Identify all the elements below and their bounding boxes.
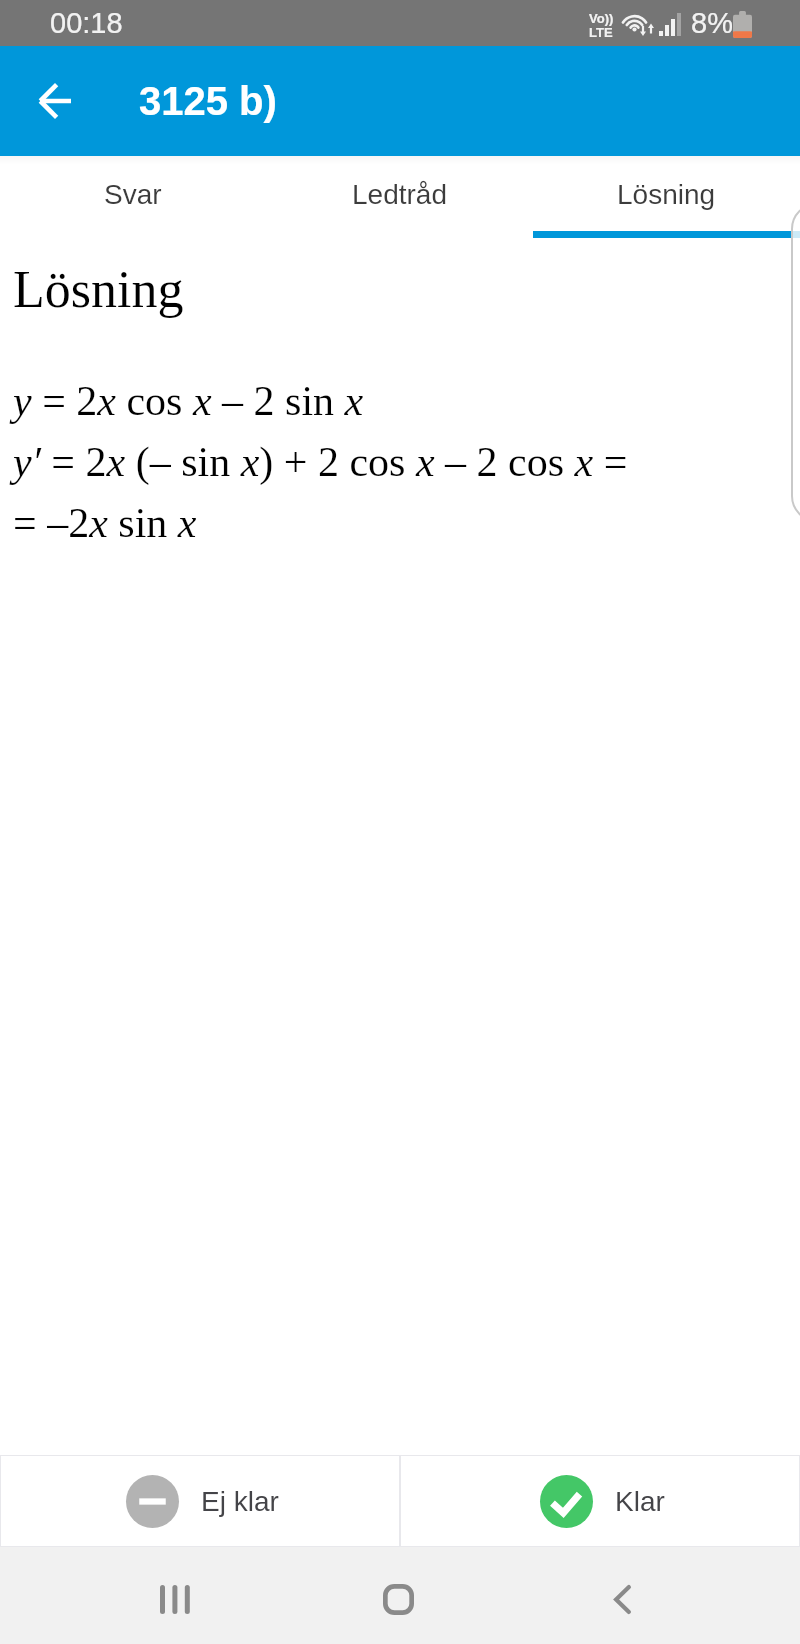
staticText: 3125 b) <box>139 79 277 124</box>
staticText: Ej klar <box>201 1486 279 1517</box>
staticText: Vo)) <box>589 11 614 26</box>
staticText: Ledtråd <box>352 179 447 210</box>
button[interactable]: Ledtråd <box>266 156 533 238</box>
button[interactable]: Back <box>18 65 90 137</box>
staticText: Klar <box>615 1486 665 1517</box>
staticText: Lösning <box>617 179 716 210</box>
staticText: = –2x sin x <box>13 500 197 547</box>
staticText: 8% <box>691 7 733 39</box>
button[interactable]: Klar <box>400 1455 800 1547</box>
staticText: LTE <box>589 25 613 40</box>
staticText: 00:18 <box>50 7 123 39</box>
button[interactable]: Back <box>582 1559 662 1639</box>
button[interactable]: Home <box>358 1559 438 1639</box>
button[interactable]: Ej klar <box>0 1455 400 1547</box>
staticText: Lösning <box>13 261 184 319</box>
button[interactable]: Svar <box>0 156 266 238</box>
button[interactable]: Lösning <box>533 156 800 238</box>
button[interactable]: Recent apps <box>134 1559 214 1639</box>
staticText: Svar <box>104 179 162 210</box>
staticText: y = 2x cos x – 2 sin x <box>13 378 364 425</box>
staticText: y′ = 2x (– sin x) + 2 cos x – 2 cos x = <box>13 439 628 486</box>
